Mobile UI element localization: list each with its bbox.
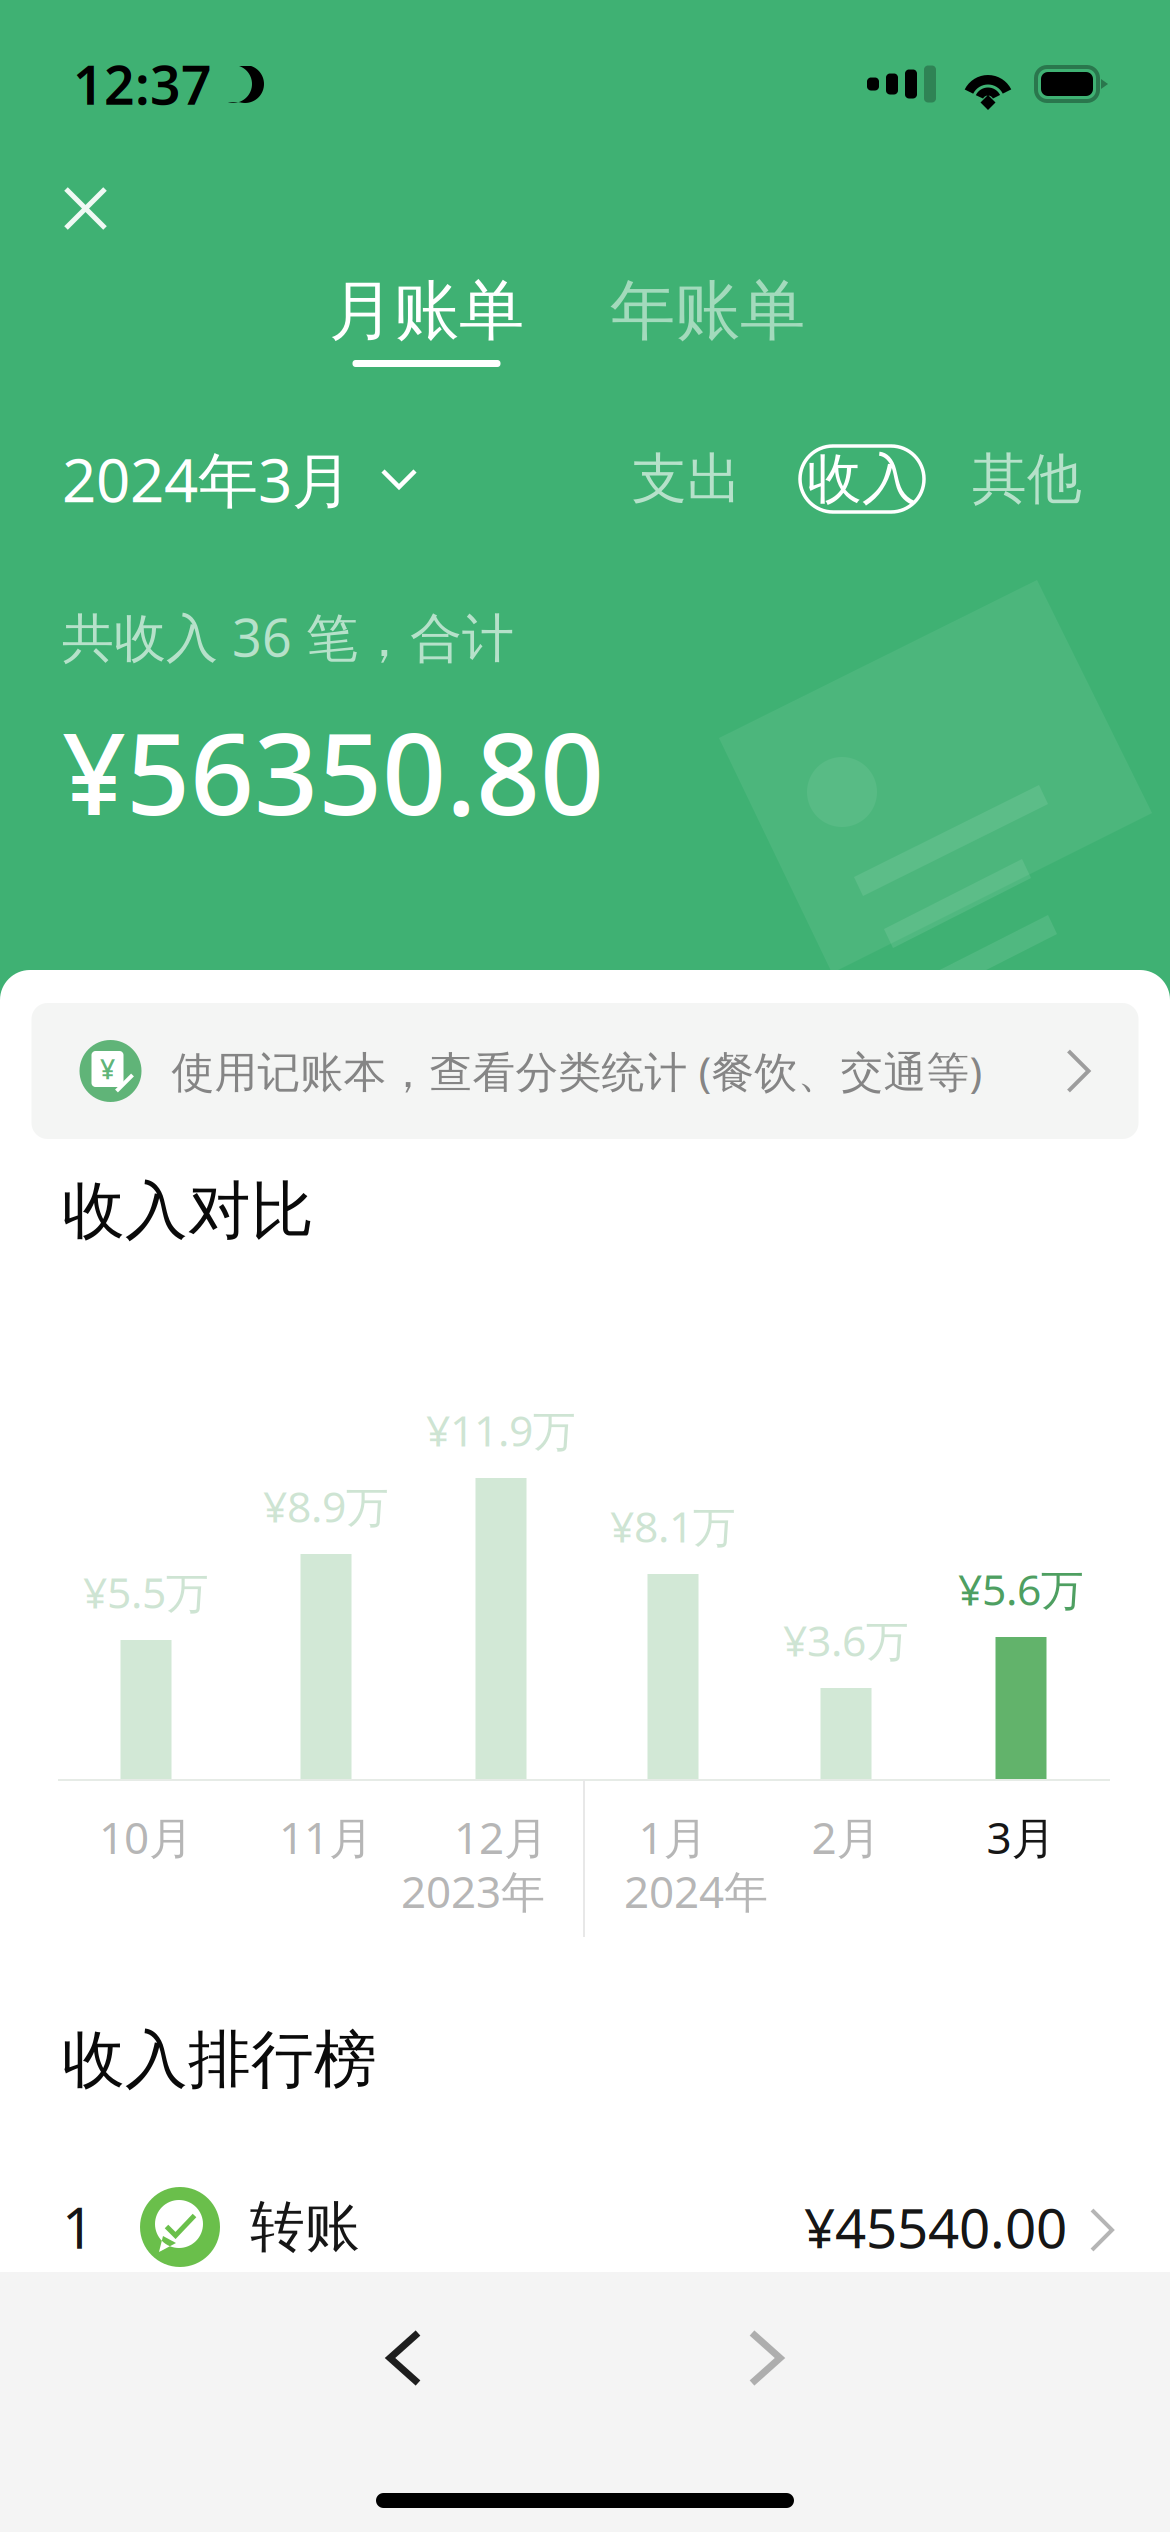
- staticText: 2月: [811, 1808, 880, 1866]
- button[interactable]: 2024年3月: [62, 444, 418, 514]
- button[interactable]: 年账单: [610, 281, 805, 367]
- staticText: ¥5.6万: [958, 1561, 1084, 1617]
- button[interactable]: 1: [0, 2174, 1170, 2280]
- staticText: ¥8.9万: [263, 1478, 389, 1534]
- staticText: 月账单: [329, 271, 524, 351]
- staticText: 10月: [99, 1808, 193, 1866]
- staticText: 收入对比: [62, 1172, 314, 1249]
- button[interactable]: 支出: [622, 444, 752, 514]
- staticText: 转账: [250, 2193, 360, 2260]
- staticText: 2024年3月: [62, 439, 352, 519]
- staticText: 1月: [638, 1808, 707, 1866]
- staticText: 2024年: [624, 1862, 768, 1920]
- staticText: 年账单: [610, 271, 805, 351]
- staticText: ¥3.6万: [783, 1612, 909, 1668]
- staticText: 11月: [279, 1808, 373, 1866]
- staticText: ¥45540.00: [804, 2191, 1067, 2263]
- staticText: 12月: [454, 1808, 548, 1866]
- staticText: ¥11.9万: [426, 1402, 576, 1458]
- staticText: 12:37: [73, 49, 212, 119]
- staticText: 3月: [986, 1808, 1055, 1866]
- staticText: 支出: [632, 445, 742, 512]
- staticText: ¥5.5万: [83, 1564, 209, 1620]
- staticText: 2023年: [401, 1862, 545, 1920]
- staticText: 1: [62, 2190, 94, 2264]
- button[interactable]: Back: [355, 2299, 453, 2417]
- button[interactable]: Forward: [717, 2299, 815, 2417]
- staticText: 收入: [807, 445, 917, 512]
- staticText: 共收入 36 笔，合计: [62, 602, 514, 671]
- button[interactable]: 收入: [800, 446, 924, 512]
- staticText: ¥56350.80: [62, 697, 604, 846]
- staticText: 其他: [972, 445, 1082, 512]
- staticText: ¥: [100, 1051, 115, 1087]
- button[interactable]: 其他: [962, 444, 1092, 514]
- button[interactable]: Close: [45, 168, 126, 249]
- button[interactable]: 月账单: [329, 281, 524, 367]
- staticText: 收入排行榜: [62, 2021, 377, 2098]
- staticText: 使用记账本，查看分类统计 (餐饮、交通等): [171, 1043, 982, 1099]
- button[interactable]: ¥: [31, 1003, 1138, 1139]
- staticText: ¥8.1万: [610, 1498, 736, 1554]
